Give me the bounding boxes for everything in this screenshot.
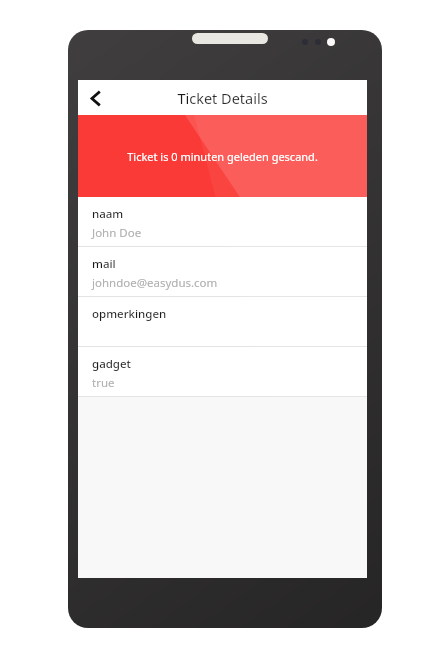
staticText: Ticket is 0 minuten geleden gescand. — [127, 149, 318, 164]
staticText: true — [92, 375, 115, 391]
staticText: mail — [92, 256, 116, 272]
button[interactable]: gadget — [78, 347, 367, 396]
button[interactable]: mail — [78, 247, 367, 296]
staticText: John Doe — [92, 225, 142, 241]
staticText: naam — [92, 206, 124, 222]
staticText: Ticket Details — [177, 88, 268, 108]
button[interactable]: opmerkingen — [78, 297, 367, 346]
staticText: opmerkingen — [92, 306, 167, 322]
staticText: gadget — [92, 356, 131, 372]
button[interactable]: naam — [78, 197, 367, 246]
button[interactable]: Back — [78, 81, 112, 115]
staticText: johndoe@easydus.com — [92, 275, 218, 291]
